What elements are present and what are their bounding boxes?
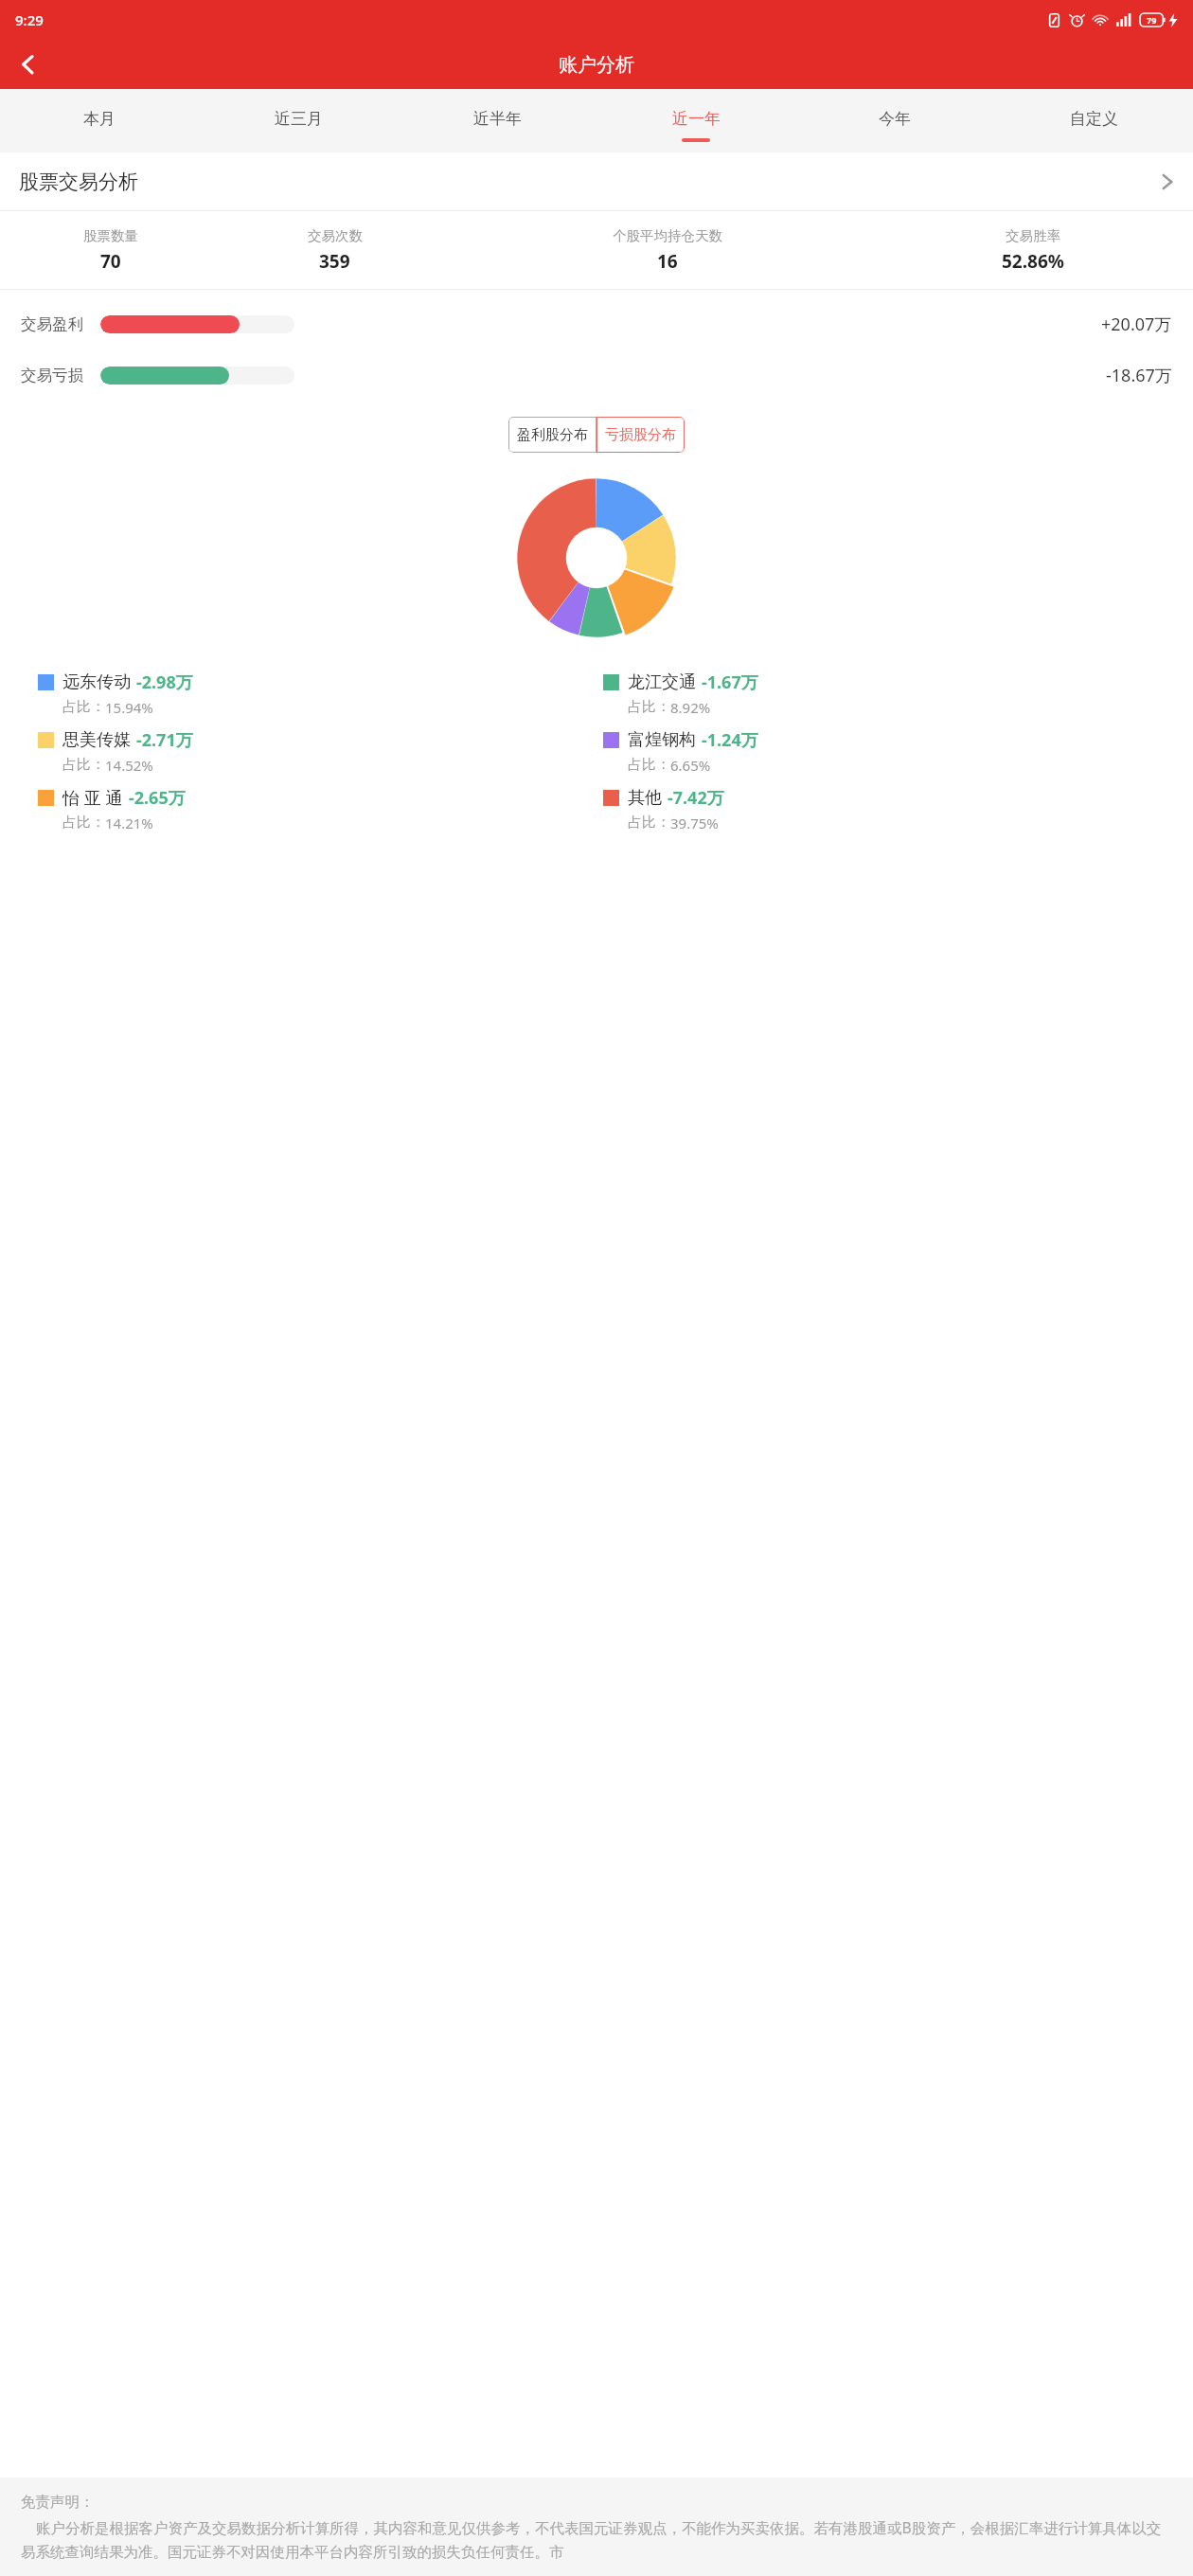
staticText: 股票数量	[83, 227, 138, 244]
staticText: 股票交易分析	[19, 170, 138, 194]
button[interactable]: Back	[8, 44, 49, 85]
staticText: 占比：	[628, 756, 670, 774]
staticText: 交易亏损	[21, 366, 83, 385]
staticText: 14.21%	[105, 814, 153, 832]
staticText: -18.67万	[1106, 364, 1172, 387]
staticText: 6.65%	[670, 756, 711, 775]
staticText: 交易胜率	[1006, 227, 1060, 244]
button[interactable]: 其他	[603, 786, 1168, 832]
staticText: 9:29	[15, 10, 44, 29]
staticText: 富煌钢构	[628, 729, 696, 751]
staticText: 免责声明：	[21, 2493, 95, 2512]
staticText: 占比：	[62, 698, 105, 716]
staticText: 359	[319, 249, 350, 274]
staticText: 占比：	[62, 814, 105, 832]
staticText: 近半年	[473, 109, 522, 129]
staticText: 占比：	[628, 698, 670, 716]
staticText: -1.24万	[702, 728, 758, 752]
button[interactable]: 亏损股分布	[596, 417, 685, 453]
staticText: 39.75%	[670, 814, 719, 832]
staticText: -7.42万	[668, 786, 724, 810]
button[interactable]: 本月	[0, 89, 199, 148]
staticText: 52.86%	[1002, 249, 1064, 274]
button[interactable]: 股票交易分析	[0, 152, 1193, 210]
staticText: -1.67万	[702, 671, 758, 694]
staticText: 交易盈利	[21, 314, 83, 334]
staticText: 占比：	[62, 756, 105, 774]
button[interactable]: 怡 亚 通	[38, 786, 603, 832]
staticText: 交易次数	[308, 227, 363, 244]
staticText: 8.92%	[670, 698, 711, 717]
button[interactable]: 近一年	[596, 89, 795, 148]
staticText: 龙江交通	[628, 671, 696, 693]
staticText: 盈利股分布	[517, 426, 588, 444]
staticText: 账户分析	[559, 53, 634, 77]
staticText: 14.52%	[105, 756, 153, 775]
button[interactable]: 自定义	[994, 89, 1193, 148]
button[interactable]: 思美传媒	[38, 728, 603, 775]
button[interactable]: 富煌钢构	[603, 728, 1168, 775]
staticText: 16	[657, 249, 678, 274]
button[interactable]: 远东传动	[38, 671, 603, 717]
staticText: 亏损股分布	[605, 426, 676, 444]
staticText: 怡 亚 通	[62, 786, 123, 810]
staticText: 远东传动	[62, 671, 131, 693]
staticText: -2.65万	[129, 786, 186, 810]
staticText: 近三月	[275, 109, 323, 129]
staticText: 思美传媒	[62, 729, 131, 751]
staticText: +20.07万	[1101, 313, 1172, 336]
staticText: -2.98万	[136, 671, 193, 694]
staticText: 占比：	[628, 814, 670, 832]
staticText: 近一年	[672, 109, 721, 129]
button[interactable]: 今年	[795, 89, 994, 148]
staticText: 79	[1147, 14, 1157, 26]
button[interactable]: 盈利股分布	[508, 417, 596, 453]
staticText: 15.94%	[105, 698, 153, 717]
staticText: 其他	[628, 787, 662, 809]
staticText: 今年	[879, 109, 911, 129]
button[interactable]: 近三月	[199, 89, 398, 148]
staticText: 70	[100, 249, 121, 274]
staticText: 本月	[83, 109, 116, 129]
staticText: -2.71万	[136, 728, 193, 752]
button[interactable]: 龙江交通	[603, 671, 1168, 717]
staticText: 账户分析是根据客户资产及交易数据分析计算所得，其内容和意见仅供参考，不代表国元证…	[21, 2517, 1172, 2561]
staticText: 个股平均持仓天数	[613, 227, 722, 244]
button[interactable]: 近半年	[398, 89, 596, 148]
staticText: 自定义	[1070, 109, 1118, 129]
